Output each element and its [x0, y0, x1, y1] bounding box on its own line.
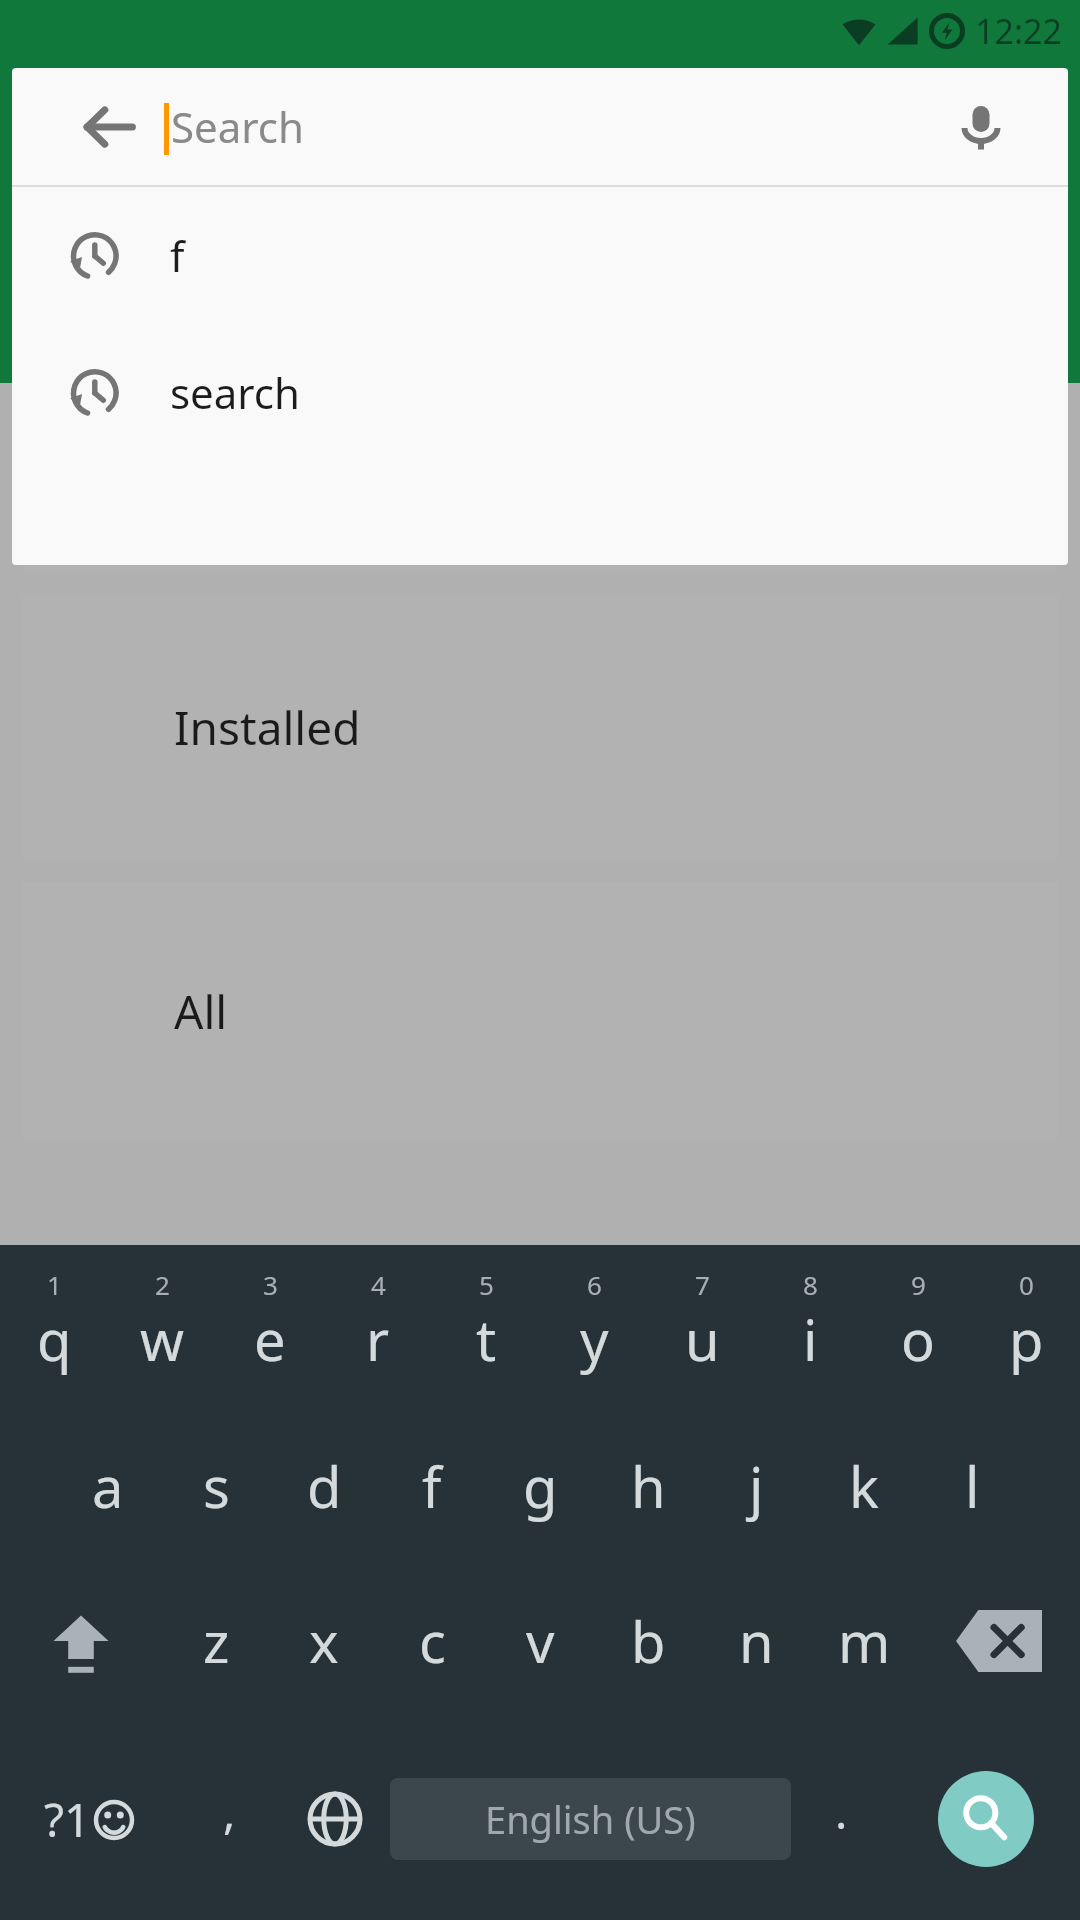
staticText: ?1 [44, 1788, 91, 1851]
button[interactable]: English (US) [390, 1718, 791, 1920]
button[interactable]: Installed [22, 595, 1058, 860]
staticText: e [254, 1301, 286, 1377]
button[interactable]: Change language [279, 1718, 390, 1920]
staticText: 2 [155, 1267, 170, 1302]
button[interactable]: 0 [972, 1245, 1080, 1408]
staticText: , [223, 1780, 236, 1843]
button[interactable]: Search [891, 1718, 1080, 1920]
staticText: i [803, 1301, 818, 1377]
button[interactable] [22, 455, 1058, 572]
button[interactable]: 2 [108, 1245, 216, 1408]
button[interactable]: n [702, 1563, 810, 1718]
button[interactable]: 5 [432, 1245, 540, 1408]
button[interactable]: 7 [648, 1245, 756, 1408]
button[interactable]: l [918, 1408, 1026, 1563]
button[interactable]: z [162, 1563, 270, 1718]
staticText: h [631, 1448, 666, 1524]
staticText: r [366, 1301, 390, 1377]
button[interactable]: g [486, 1408, 594, 1563]
staticText: 1 [47, 1267, 62, 1302]
staticText: 6 [587, 1267, 602, 1302]
button[interactable]: b [594, 1563, 702, 1718]
staticText: 5 [479, 1267, 494, 1302]
button[interactable]: . [791, 1718, 891, 1920]
staticText: 4 [371, 1267, 386, 1302]
button[interactable]: All [22, 882, 1058, 1140]
staticText: y [580, 1301, 609, 1377]
button[interactable]: m [810, 1563, 918, 1718]
staticText: 9 [911, 1267, 926, 1302]
staticText: c [419, 1603, 446, 1679]
button[interactable]: k [810, 1408, 918, 1563]
staticText: Search [171, 98, 304, 155]
button[interactable]: , [179, 1718, 279, 1920]
button[interactable]: Shift [0, 1563, 162, 1718]
button[interactable]: v [486, 1563, 594, 1718]
button[interactable]: a [54, 1408, 162, 1563]
button[interactable]: Symbols and emoji [0, 1718, 179, 1920]
button[interactable]: 4 [324, 1245, 432, 1408]
staticText: x [309, 1603, 339, 1679]
staticText: 3 [263, 1267, 278, 1302]
staticText: d [307, 1448, 342, 1524]
staticText: j [749, 1448, 764, 1524]
staticText: v [526, 1603, 555, 1679]
staticText: English (US) [485, 1793, 696, 1845]
button[interactable]: Backspace [918, 1563, 1080, 1718]
staticText: f [422, 1448, 442, 1524]
staticText: o [901, 1301, 935, 1377]
staticText: b [631, 1603, 666, 1679]
staticText: u [685, 1301, 720, 1377]
staticText: q [37, 1301, 72, 1377]
button[interactable]: 3 [216, 1245, 324, 1408]
staticText: w [140, 1301, 185, 1377]
staticText: . [835, 1780, 848, 1843]
button[interactable]: Back [60, 78, 158, 176]
staticText: z [203, 1603, 230, 1679]
staticText: a [92, 1448, 124, 1524]
button[interactable]: 9 [864, 1245, 972, 1408]
button[interactable]: h [594, 1408, 702, 1563]
staticText: n [739, 1603, 774, 1679]
staticText: s [203, 1448, 230, 1524]
button[interactable]: c [378, 1563, 486, 1718]
staticText: f [170, 227, 185, 284]
staticText: 0 [1019, 1267, 1034, 1302]
staticText: 8 [803, 1267, 818, 1302]
staticText: All [174, 980, 228, 1043]
button[interactable]: 6 [540, 1245, 648, 1408]
staticText: Installed [174, 696, 361, 759]
button[interactable]: s [162, 1408, 270, 1563]
button[interactable]: d [270, 1408, 378, 1563]
button[interactable]: Voice search [932, 78, 1030, 176]
button[interactable]: x [270, 1563, 378, 1718]
staticText: k [849, 1448, 879, 1524]
staticText: t [476, 1301, 497, 1377]
button[interactable]: j [702, 1408, 810, 1563]
staticText: m [838, 1603, 891, 1679]
button[interactable]: search [12, 324, 1068, 461]
staticText: 7 [695, 1267, 710, 1302]
staticText: search [170, 364, 300, 421]
button[interactable]: f [12, 187, 1068, 324]
button[interactable]: 1 [0, 1245, 108, 1408]
button[interactable]: 8 [756, 1245, 864, 1408]
button[interactable]: f [378, 1408, 486, 1563]
staticText: p [1009, 1301, 1044, 1377]
staticText: 12:22 [975, 8, 1062, 54]
staticText: l [965, 1448, 980, 1524]
staticText: g [523, 1448, 558, 1524]
